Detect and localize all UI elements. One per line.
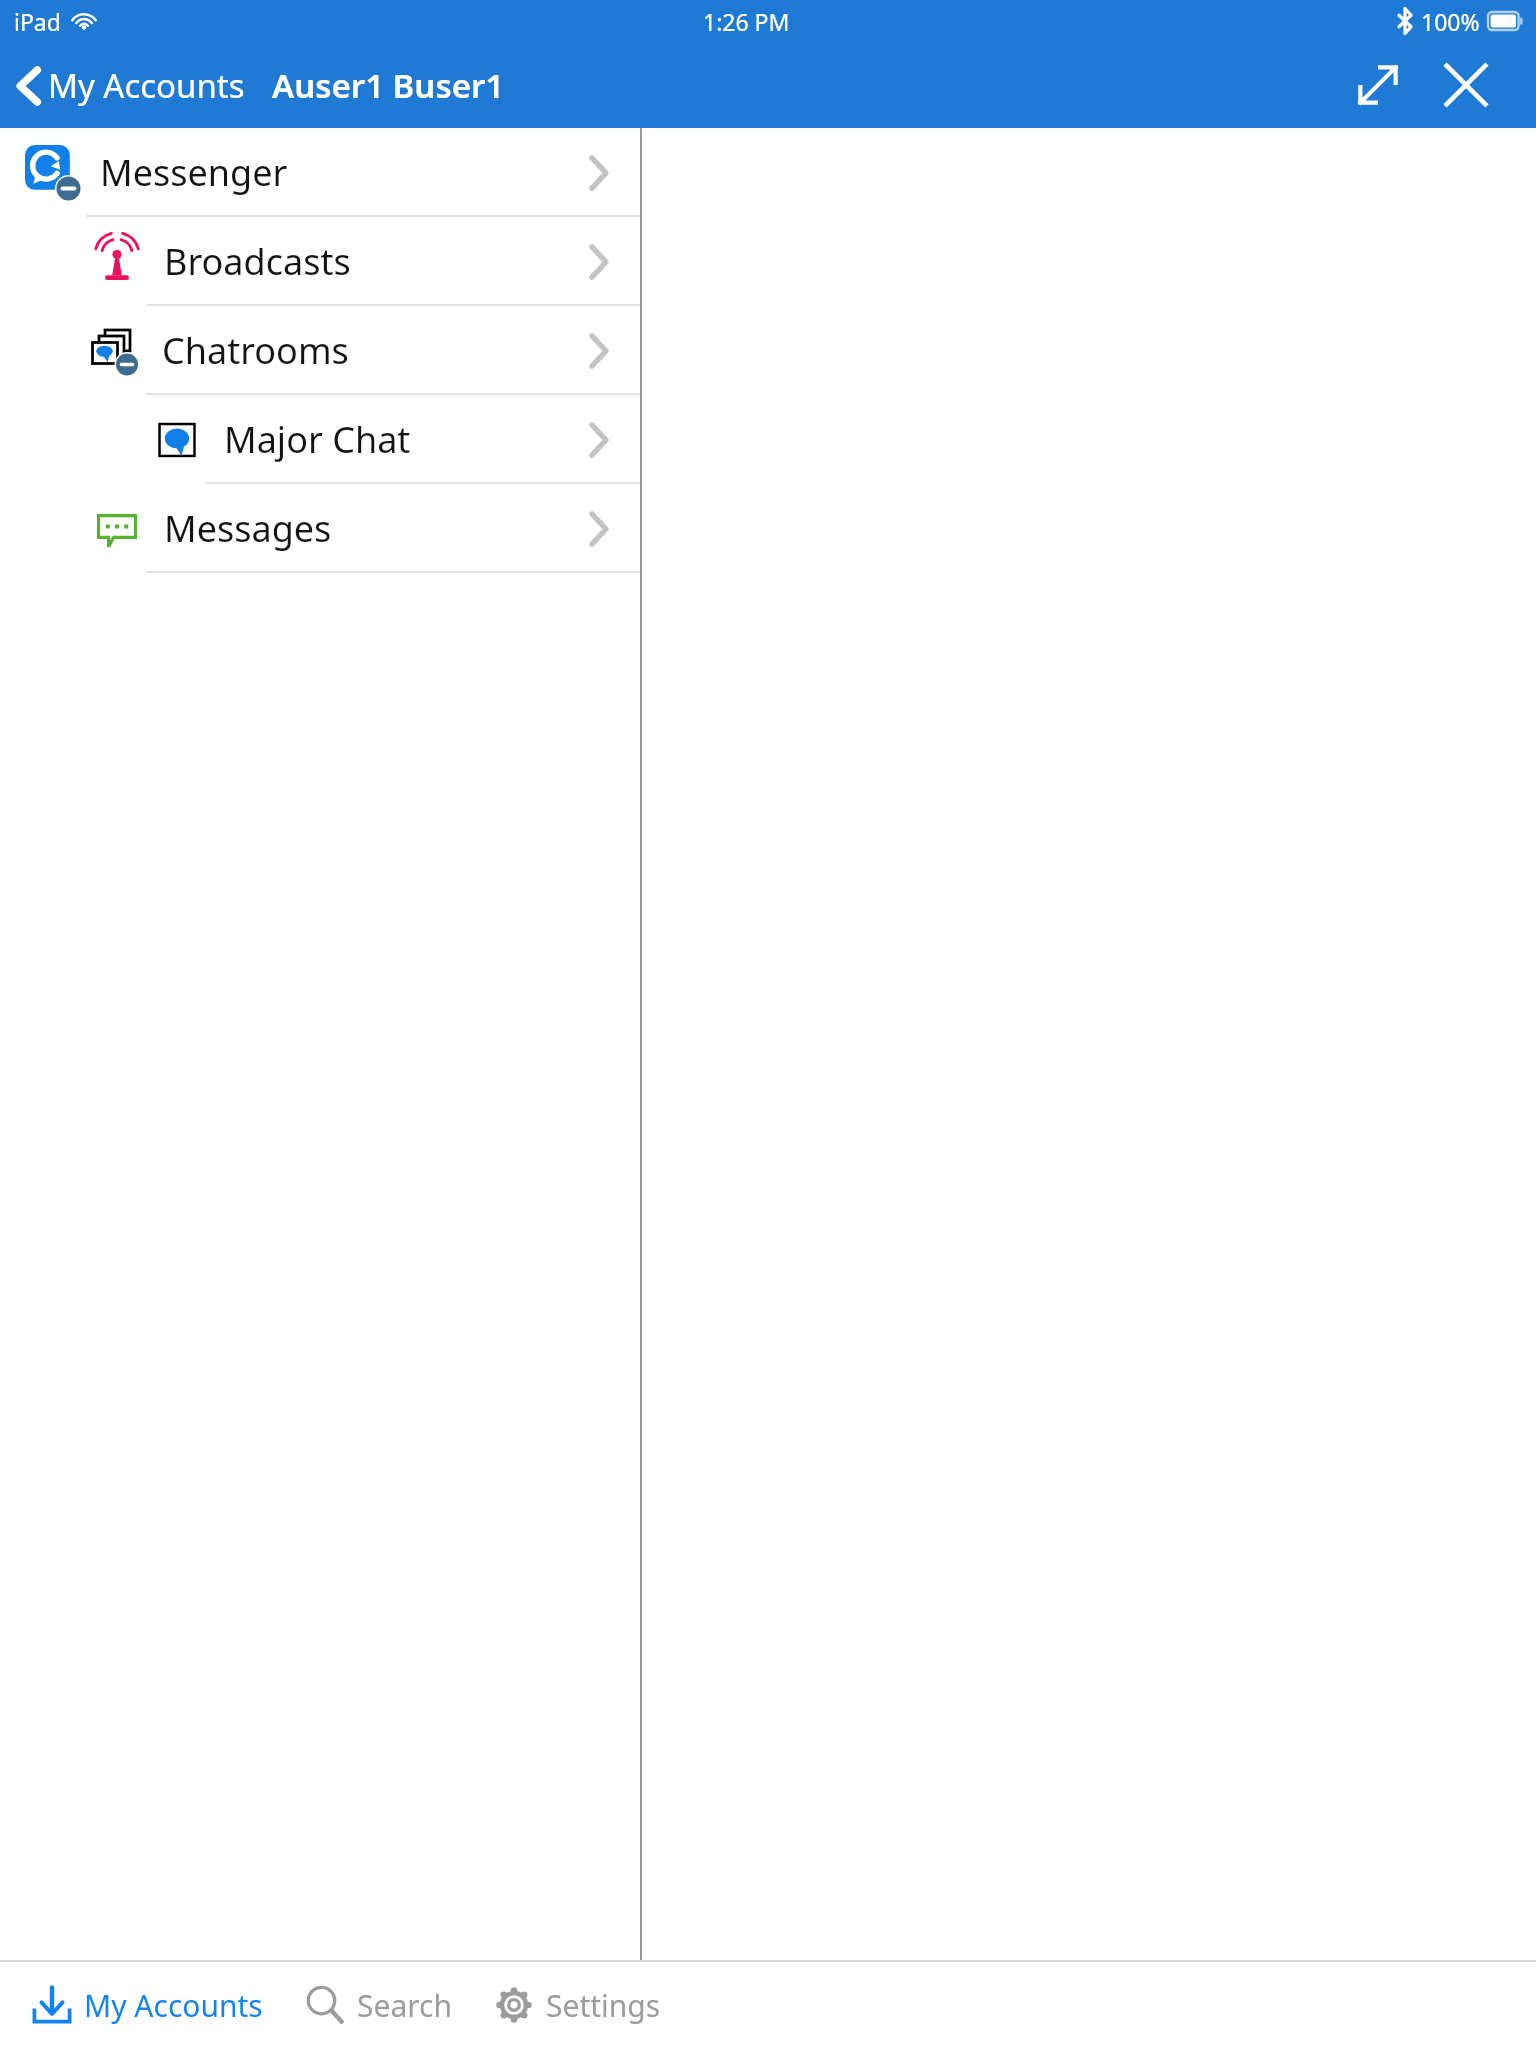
button[interactable]: Broadcasts [0,217,640,306]
staticText: My Accounts [84,1985,263,2026]
button[interactable]: Major Chat [0,395,640,484]
staticText: iPad [14,6,61,37]
button[interactable]: Back [16,63,257,108]
staticText: 100% [1421,6,1480,37]
staticText: Chatrooms [162,326,349,375]
button[interactable]: Chatrooms [0,306,640,395]
staticText: 1:26 PM [703,6,790,37]
button[interactable]: My Accounts [22,1975,271,2035]
staticText: Messenger [100,148,288,197]
staticText: Settings [546,1985,661,2026]
staticText: Auser1 Buser1 [272,63,505,108]
button[interactable]: Search [295,1975,460,2035]
staticText: My Accounts [48,63,245,108]
button[interactable]: Messages [0,484,640,573]
button[interactable]: Settings [484,1975,669,2035]
staticText: Messages [164,504,332,553]
button[interactable]: Expand [1342,49,1414,121]
staticText: Broadcasts [164,237,351,286]
staticText: Major Chat [224,415,411,464]
other: Back [16,65,42,107]
button[interactable]: Messenger [0,128,640,217]
staticText: Search [357,1985,452,2026]
button[interactable]: Close [1430,49,1502,121]
